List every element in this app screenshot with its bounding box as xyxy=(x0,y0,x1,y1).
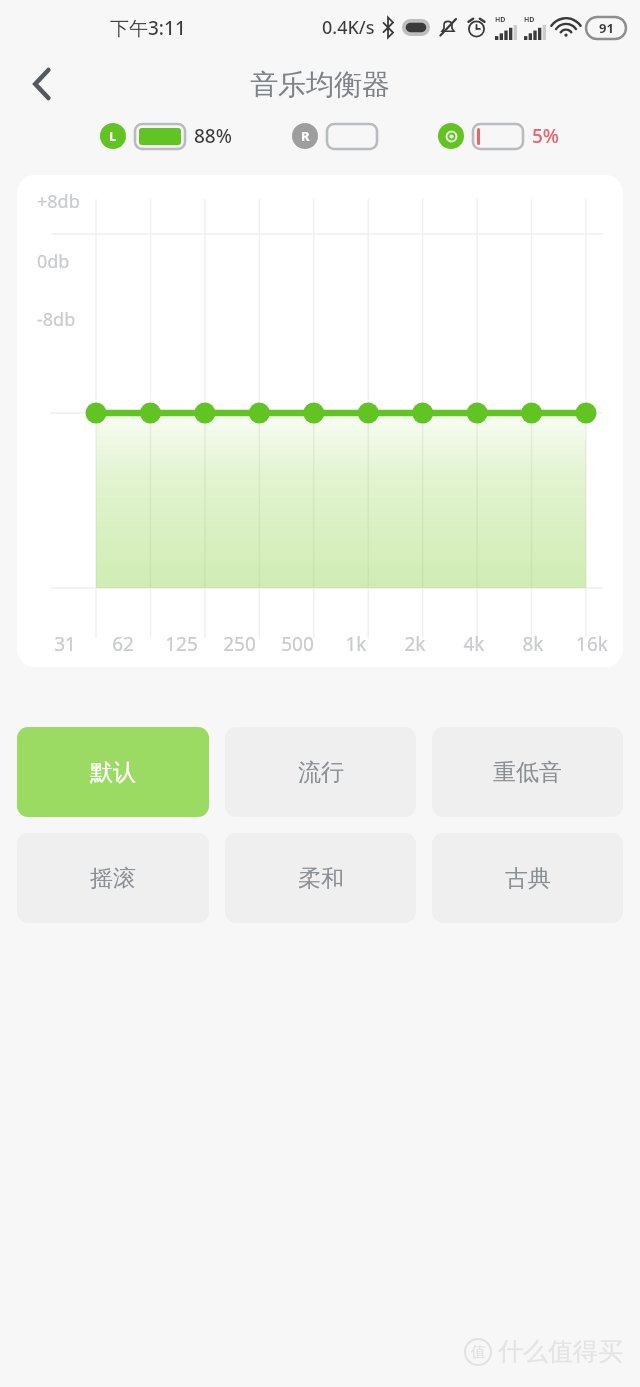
button[interactable]: 默认 xyxy=(17,727,209,817)
staticText: 音乐均衡器 xyxy=(250,67,390,102)
staticText: 什么值得买 xyxy=(498,1336,623,1367)
staticText: 值 xyxy=(471,1343,486,1362)
staticText: 流行 xyxy=(298,758,344,787)
button[interactable]: 古典 xyxy=(432,833,623,923)
staticText: R xyxy=(301,127,310,145)
staticText: 250 xyxy=(223,631,256,657)
staticText: 88% xyxy=(194,123,232,149)
staticText: 2k xyxy=(404,631,426,657)
button[interactable]: Back xyxy=(18,60,66,108)
staticText: L xyxy=(109,127,117,145)
staticText: 16k xyxy=(576,631,608,657)
staticText: 5% xyxy=(532,123,560,149)
staticText: -8db xyxy=(37,307,76,332)
staticText: 0db xyxy=(37,249,70,274)
staticText: 91 xyxy=(599,19,614,37)
staticText: 8k xyxy=(522,631,544,657)
staticText: 默认 xyxy=(90,758,136,787)
button[interactable]: 重低音 xyxy=(432,727,623,817)
staticText: 重低音 xyxy=(493,758,562,787)
staticText: 500 xyxy=(281,631,314,657)
staticText: 摇滚 xyxy=(90,864,136,893)
staticText: HD xyxy=(495,15,506,25)
staticText: HD xyxy=(524,15,535,25)
staticText: 下午3:11 xyxy=(110,15,186,41)
staticText: 31 xyxy=(54,631,76,657)
button[interactable]: 柔和 xyxy=(225,833,416,923)
staticText: 0.4K/s xyxy=(322,15,375,40)
staticText: 柔和 xyxy=(298,864,344,893)
staticText: 125 xyxy=(165,631,198,657)
button[interactable]: 摇滚 xyxy=(17,833,209,923)
staticText: 4k xyxy=(463,631,485,657)
staticText: 古典 xyxy=(505,864,551,893)
button[interactable]: 流行 xyxy=(225,727,416,817)
staticText: 62 xyxy=(112,631,134,657)
staticText: +8db xyxy=(37,189,80,214)
staticText: 1k xyxy=(345,631,367,657)
